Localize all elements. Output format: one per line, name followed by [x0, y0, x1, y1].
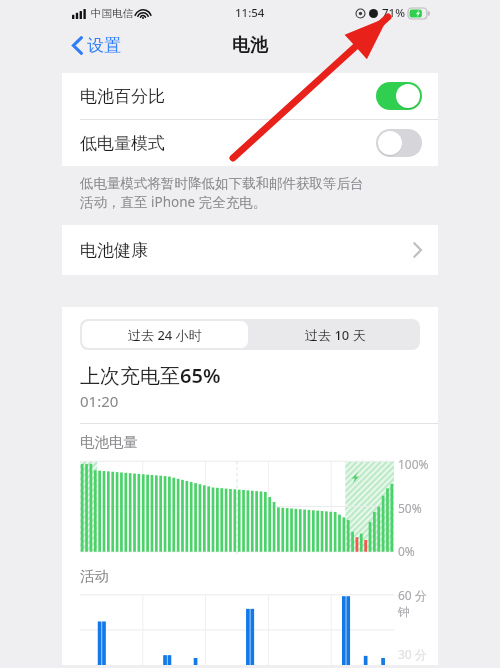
button[interactable]: Off [376, 129, 422, 157]
button[interactable]: 电池健康 [62, 225, 438, 275]
staticText: 中国电信 [91, 7, 133, 20]
button[interactable]: 电池百分比 [62, 73, 438, 119]
button[interactable]: On [376, 82, 422, 110]
staticText: 低电量模式 [80, 133, 165, 154]
staticText: 低电量模式将暂时降低如下载和邮件获取等后台 活动，直至 iPhone 完全充电。 [80, 175, 364, 211]
staticText: 过去 10 天 [305, 326, 366, 344]
staticText: 活动 [80, 567, 109, 585]
staticText: 电池电量 [80, 433, 138, 451]
staticText: 30 分钟 [398, 646, 438, 665]
button[interactable]: 过去 24 小时 [82, 321, 248, 348]
staticText: 上次充电至65% [80, 362, 221, 389]
staticText: 60 分钟 [398, 587, 438, 620]
staticText: 设置 [87, 35, 121, 56]
staticText: 11:54 [235, 5, 265, 21]
button[interactable]: 过去 10 天 [250, 319, 420, 350]
staticText: 71% [382, 5, 405, 21]
staticText: 电池百分比 [80, 86, 165, 107]
staticText: 0% [398, 543, 415, 559]
staticText: 01:20 [80, 391, 119, 411]
staticText: 50% [398, 500, 422, 516]
button[interactable]: 低电量模式 [62, 120, 438, 166]
staticText: 100% [398, 456, 429, 472]
staticText: 电池健康 [80, 240, 148, 261]
button[interactable]: 设置 [68, 32, 125, 59]
staticText: 电池 [232, 34, 268, 57]
staticText: 过去 24 小时 [128, 326, 202, 344]
